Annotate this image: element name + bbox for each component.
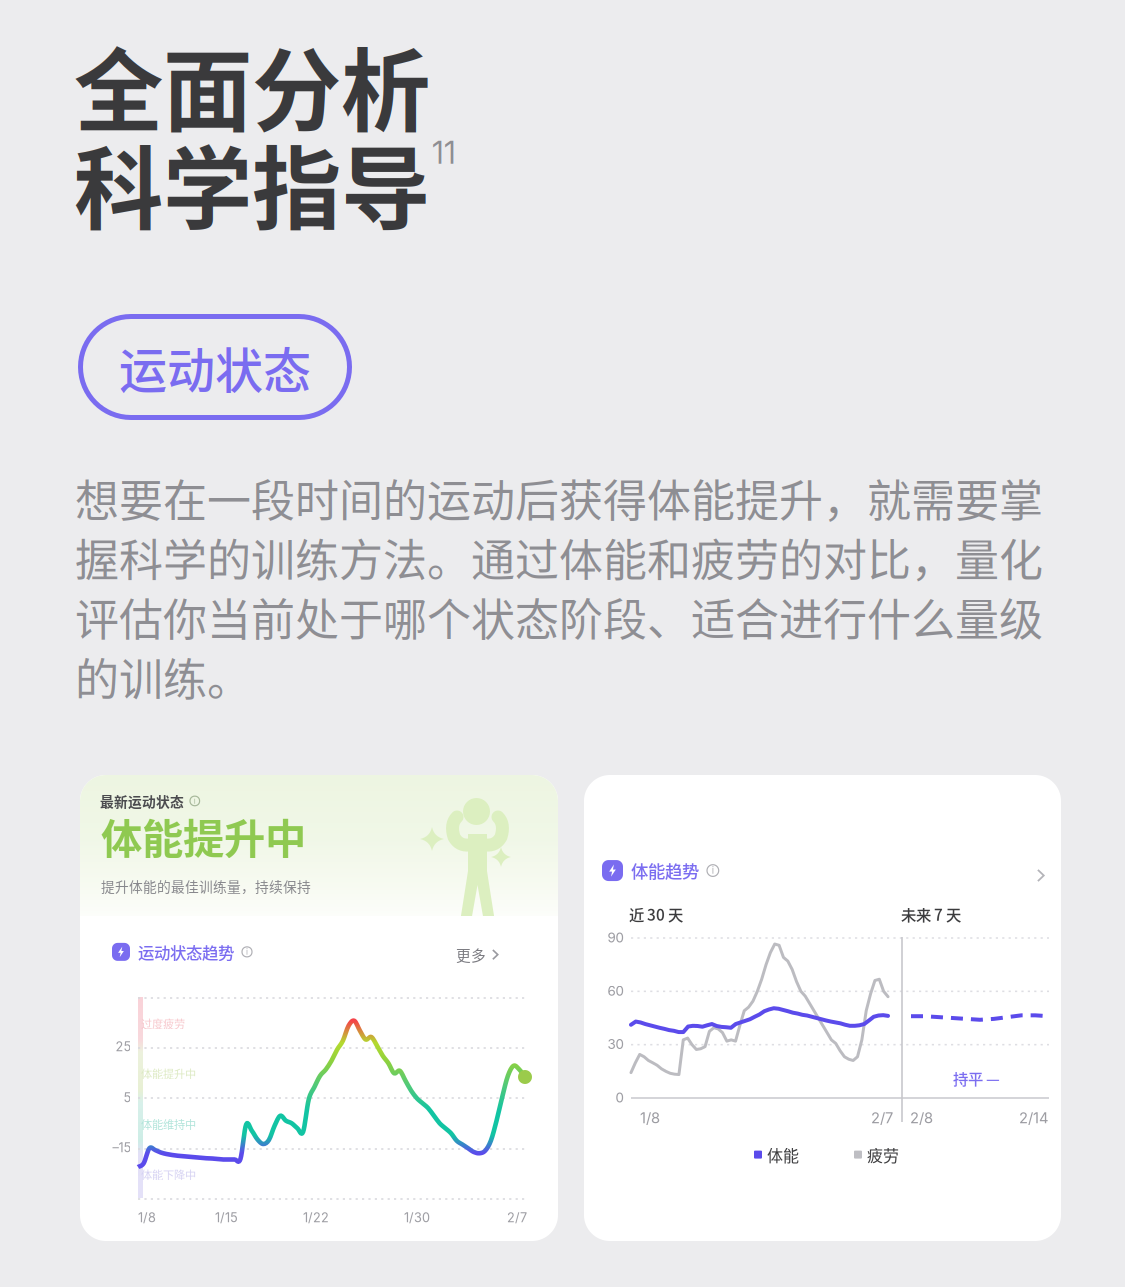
staticText: 最新运动状态 xyxy=(100,791,184,811)
staticText: 1/15 xyxy=(215,1210,238,1225)
staticText: 未来 7 天 xyxy=(901,903,961,925)
staticText: 60 xyxy=(607,983,623,999)
staticText: 运动状态 xyxy=(119,332,311,402)
button[interactable]: 更多 xyxy=(456,944,499,965)
staticText: 1/8 xyxy=(138,1210,156,1225)
button[interactable]: 运动状态 xyxy=(78,314,352,420)
staticText: 2/7 xyxy=(871,1109,893,1127)
staticText: 过度疲劳 xyxy=(141,1015,185,1032)
staticText: 体能 xyxy=(767,1143,799,1166)
staticText: 疲劳 xyxy=(867,1143,899,1166)
staticText: i xyxy=(194,796,196,805)
staticText: 想要在一段时间的运动后获得体能提升，就需要掌握科学的训练方法。通过体能和疲劳的对… xyxy=(75,468,1043,706)
staticText: 90 xyxy=(607,929,623,946)
staticText: 持平 — xyxy=(953,1067,1000,1089)
staticText: 2/7 xyxy=(507,1210,527,1225)
staticText: 11 xyxy=(432,134,456,171)
staticText: 1/8 xyxy=(640,1109,660,1127)
staticText: 运动状态趋势 xyxy=(138,940,234,964)
staticText: 科学指导 xyxy=(74,118,430,247)
staticText: 更多 xyxy=(456,944,486,965)
staticText: i xyxy=(712,864,714,876)
staticText: 近 30 天 xyxy=(629,903,683,925)
staticText: 体能下降中 xyxy=(141,1166,196,1183)
staticText: 体能维持中 xyxy=(141,1116,196,1132)
staticText: 全面分析 xyxy=(74,20,430,149)
staticText: 2/8 xyxy=(910,1109,933,1127)
staticText: 体能趋势 xyxy=(631,858,699,883)
staticText: 2/14 xyxy=(1019,1109,1048,1127)
staticText: 体能提升中 xyxy=(141,1065,196,1082)
staticText: 25 xyxy=(115,1039,131,1054)
staticText: –15 xyxy=(112,1140,131,1155)
staticText: 1/22 xyxy=(303,1210,329,1225)
staticText: 体能提升中 xyxy=(101,806,306,866)
button[interactable]: More xyxy=(1031,863,1052,888)
staticText: 提升体能的最佳训练量，持续保持 xyxy=(101,876,311,896)
staticText: i xyxy=(246,947,248,957)
staticText: 5 xyxy=(123,1090,131,1105)
staticText: 1/30 xyxy=(404,1210,430,1225)
staticText: 30 xyxy=(607,1036,623,1052)
staticText: 0 xyxy=(615,1089,623,1106)
